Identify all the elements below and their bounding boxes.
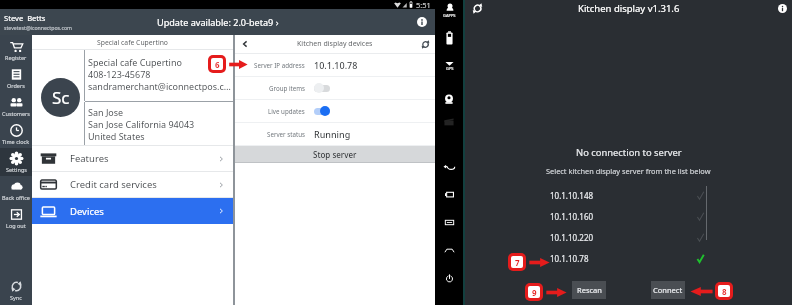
staticText: Time clock (2, 138, 30, 145)
button[interactable]: Camera (443, 93, 455, 105)
button[interactable]: Rescan (572, 281, 606, 299)
button[interactable]: 10.1.10.220 (550, 227, 707, 248)
staticText: United States (88, 130, 145, 142)
staticText: 5:51 (416, 0, 431, 9)
button[interactable]: Devices (32, 198, 233, 224)
staticText: Back office (2, 194, 30, 201)
staticText: Kitchen display v1.31.6 (578, 2, 680, 15)
staticText: Running (314, 128, 351, 140)
staticText: GAPPS (443, 13, 456, 18)
staticText: San Jose (88, 106, 124, 118)
staticText: Kitchen display devices (297, 39, 373, 49)
staticText: sandramerchant@iconnectpos.c… (88, 80, 231, 92)
staticText: 9 (532, 287, 537, 298)
staticText: Rescan (577, 285, 602, 295)
button[interactable]: Settings (0, 148, 32, 176)
button[interactable]: Home (444, 245, 455, 256)
button[interactable]: Power (444, 273, 455, 284)
button[interactable]: Refresh (421, 40, 430, 49)
staticText: San Jose California 94043 (88, 118, 195, 130)
staticText: Stop server (313, 149, 357, 160)
staticText: Select kitchen display server from the l… (546, 166, 711, 176)
staticText: Orders (7, 82, 25, 89)
button[interactable]: Record (443, 116, 455, 128)
button[interactable]: Credit card services (32, 172, 233, 197)
button[interactable]: GAPPS (443, 3, 456, 18)
staticText: Special cafe Cupertino (88, 56, 182, 68)
button[interactable]: Orders (0, 64, 32, 92)
button[interactable]: Server status (235, 123, 435, 145)
staticText: 10.1.10.220 (550, 232, 594, 243)
button[interactable]: Recents (444, 189, 455, 200)
button[interactable]: Info (778, 4, 787, 13)
staticText: Log out (6, 222, 26, 229)
staticText: 7 (515, 257, 520, 268)
staticText: Server IP address (254, 61, 305, 69)
staticText: Live updates (268, 107, 305, 115)
button[interactable]: Menu (444, 217, 455, 228)
staticText: GPS (446, 66, 454, 71)
staticText: 10.1.10.160 (550, 211, 594, 222)
button[interactable]: Connect (651, 281, 685, 299)
staticText: 8 (722, 286, 727, 297)
button[interactable]: 10.1.10.160 (550, 206, 707, 227)
staticText: Devices (70, 205, 104, 218)
staticText: Server status (267, 130, 305, 138)
button[interactable]: Back office (0, 176, 32, 204)
staticText: Settings (6, 166, 27, 173)
staticText: No connection to server (576, 146, 682, 159)
staticText: 6 (215, 59, 220, 70)
staticText: Sync (10, 294, 22, 301)
button[interactable]: Live updates (235, 100, 435, 122)
button[interactable]: Sync (0, 276, 32, 304)
staticText: Customers (2, 110, 30, 117)
button[interactable]: Stop server (235, 146, 435, 162)
button[interactable]: Customers (0, 92, 32, 120)
staticText: Special cafe Cupertino (97, 38, 168, 47)
staticText: Connect (653, 285, 683, 295)
button[interactable]: Battery (445, 31, 454, 45)
staticText: Steve Betts (4, 13, 46, 23)
button[interactable]: Back (240, 39, 250, 49)
button[interactable]: Time clock (0, 120, 32, 148)
button[interactable]: GPS (445, 61, 454, 71)
staticText: Update available: 2.0-beta9 › (157, 16, 279, 28)
staticText: Credit card services (70, 178, 157, 191)
staticText: 10.1.10.78 (314, 59, 358, 71)
staticText: 10.1.10.148 (550, 190, 594, 201)
staticText: Group items (269, 84, 305, 92)
button[interactable]: 10.1.10.148 (550, 185, 707, 206)
button[interactable]: Server IP address (235, 54, 435, 76)
staticText: 408-123-45678 (88, 68, 151, 80)
button[interactable]: 10.1.10.78 (550, 248, 707, 269)
button[interactable]: Features (32, 146, 233, 171)
staticText: Features (70, 152, 109, 165)
staticText: 10.1.10.78 (550, 253, 589, 264)
button[interactable]: Log out (0, 204, 32, 232)
button[interactable]: Register (0, 36, 32, 64)
button[interactable]: Refresh (472, 3, 483, 14)
button[interactable]: Group items (235, 77, 435, 99)
staticText: Sc (52, 86, 70, 109)
staticText: stevetest@iconnectpos.com (4, 24, 72, 31)
button[interactable]: Back (443, 160, 456, 173)
staticText: Register (5, 54, 27, 61)
button[interactable]: Info (417, 17, 427, 27)
